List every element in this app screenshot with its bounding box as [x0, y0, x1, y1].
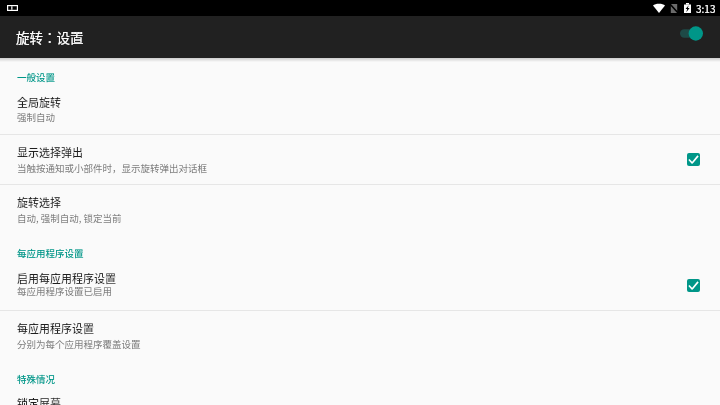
staticText: 旋转选择 — [17, 194, 61, 210]
other: Wi-Fi — [653, 3, 665, 13]
staticText: 强制自动 — [17, 110, 56, 124]
staticText: 一般设置 — [17, 70, 56, 84]
staticText: 每应用程序设置已启用 — [17, 284, 113, 298]
staticText: 全局旋转 — [17, 94, 61, 110]
button[interactable]: Toggle 启用每应用程序设置 — [680, 272, 706, 298]
button[interactable]: 启用每应用程序设置 — [0, 265, 720, 310]
other: Battery charging — [684, 3, 691, 13]
staticText: 分别为每个应用程序覆盖设置 — [17, 337, 141, 351]
button[interactable]: 每应用程序设置 — [0, 311, 720, 360]
staticText: 特殊情况 — [17, 372, 56, 386]
staticText: 显示选择弹出 — [17, 144, 83, 160]
staticText: 自动, 强制自动, 锁定当前 — [17, 211, 122, 225]
button[interactable]: 显示选择弹出 — [0, 135, 720, 184]
button[interactable]: 全局旋转 — [0, 90, 720, 134]
staticText: 旋转：设置 — [16, 27, 84, 47]
other: Notification — [7, 5, 18, 11]
button[interactable]: Toggle 显示选择弹出 — [680, 146, 706, 172]
staticText: 3:13 — [696, 1, 716, 15]
button[interactable]: 锁定屏幕 — [0, 390, 720, 405]
staticText: 启用每应用程序设置 — [17, 270, 116, 286]
button[interactable]: 旋转选择 — [0, 185, 720, 235]
staticText: 锁定屏幕 — [17, 395, 61, 405]
other: No mobile signal — [670, 4, 678, 13]
button[interactable]: Enable rotation service — [673, 19, 709, 47]
staticText: 当触按通知或小部件时，显示旋转弹出对话框 — [17, 161, 208, 175]
staticText: 每应用程序设置 — [17, 320, 94, 336]
staticText: 每应用程序设置 — [17, 246, 84, 260]
